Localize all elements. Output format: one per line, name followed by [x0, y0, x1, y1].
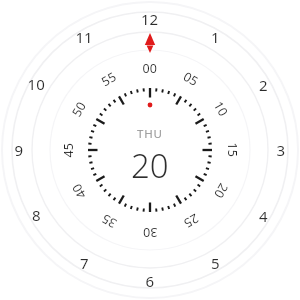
button[interactable]: Analog watch face, Thursday the 20th — [0, 0, 300, 300]
